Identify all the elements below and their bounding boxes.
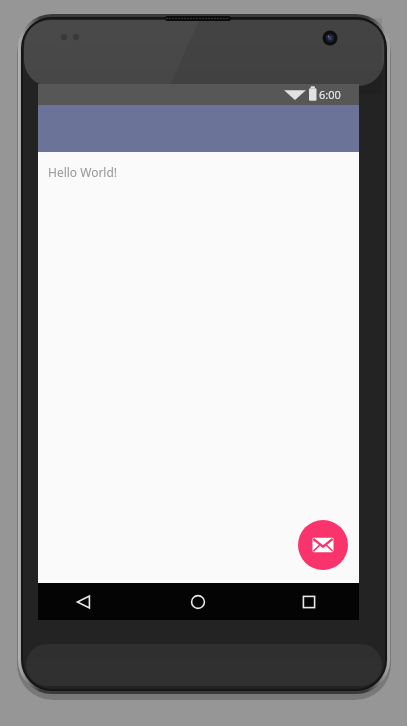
button[interactable]: Recent apps	[297, 590, 321, 614]
button[interactable]: Compose email	[298, 520, 348, 570]
button[interactable]: Home	[186, 590, 210, 614]
staticText: Hello World!	[48, 164, 118, 180]
staticText: 6:00	[319, 87, 341, 102]
button[interactable]: Back	[72, 590, 96, 614]
